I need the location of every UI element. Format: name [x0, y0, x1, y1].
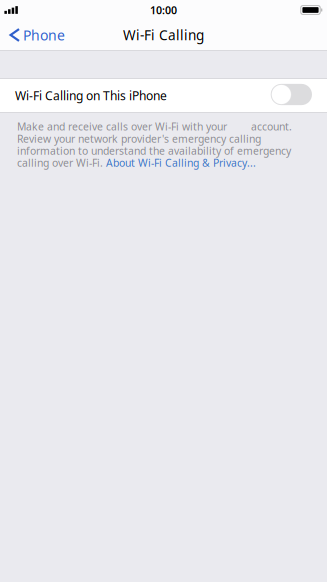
staticText: 10:00	[150, 3, 177, 17]
staticText: About Wi-Fi Calling & Privacy...	[106, 156, 256, 170]
button[interactable]: Wi-Fi Calling on This iPhone	[0, 79, 327, 112]
button[interactable]: Phone	[0, 20, 73, 50]
staticText: Review your network provider's emergency…	[17, 132, 261, 146]
staticText: Make and receive calls over Wi-Fi with y…	[17, 119, 292, 134]
staticText: Wi-Fi Calling on This iPhone	[15, 87, 167, 104]
staticText: Wi-Fi Calling	[123, 26, 204, 44]
staticText: calling over Wi-Fi.	[17, 156, 106, 170]
staticText: Phone	[23, 25, 65, 45]
button[interactable]: Wi-Fi Calling on This iPhone	[271, 85, 312, 106]
button[interactable]: About Wi-Fi Calling & Privacy...	[106, 156, 256, 170]
staticText: information to understand the availabili…	[17, 144, 291, 158]
